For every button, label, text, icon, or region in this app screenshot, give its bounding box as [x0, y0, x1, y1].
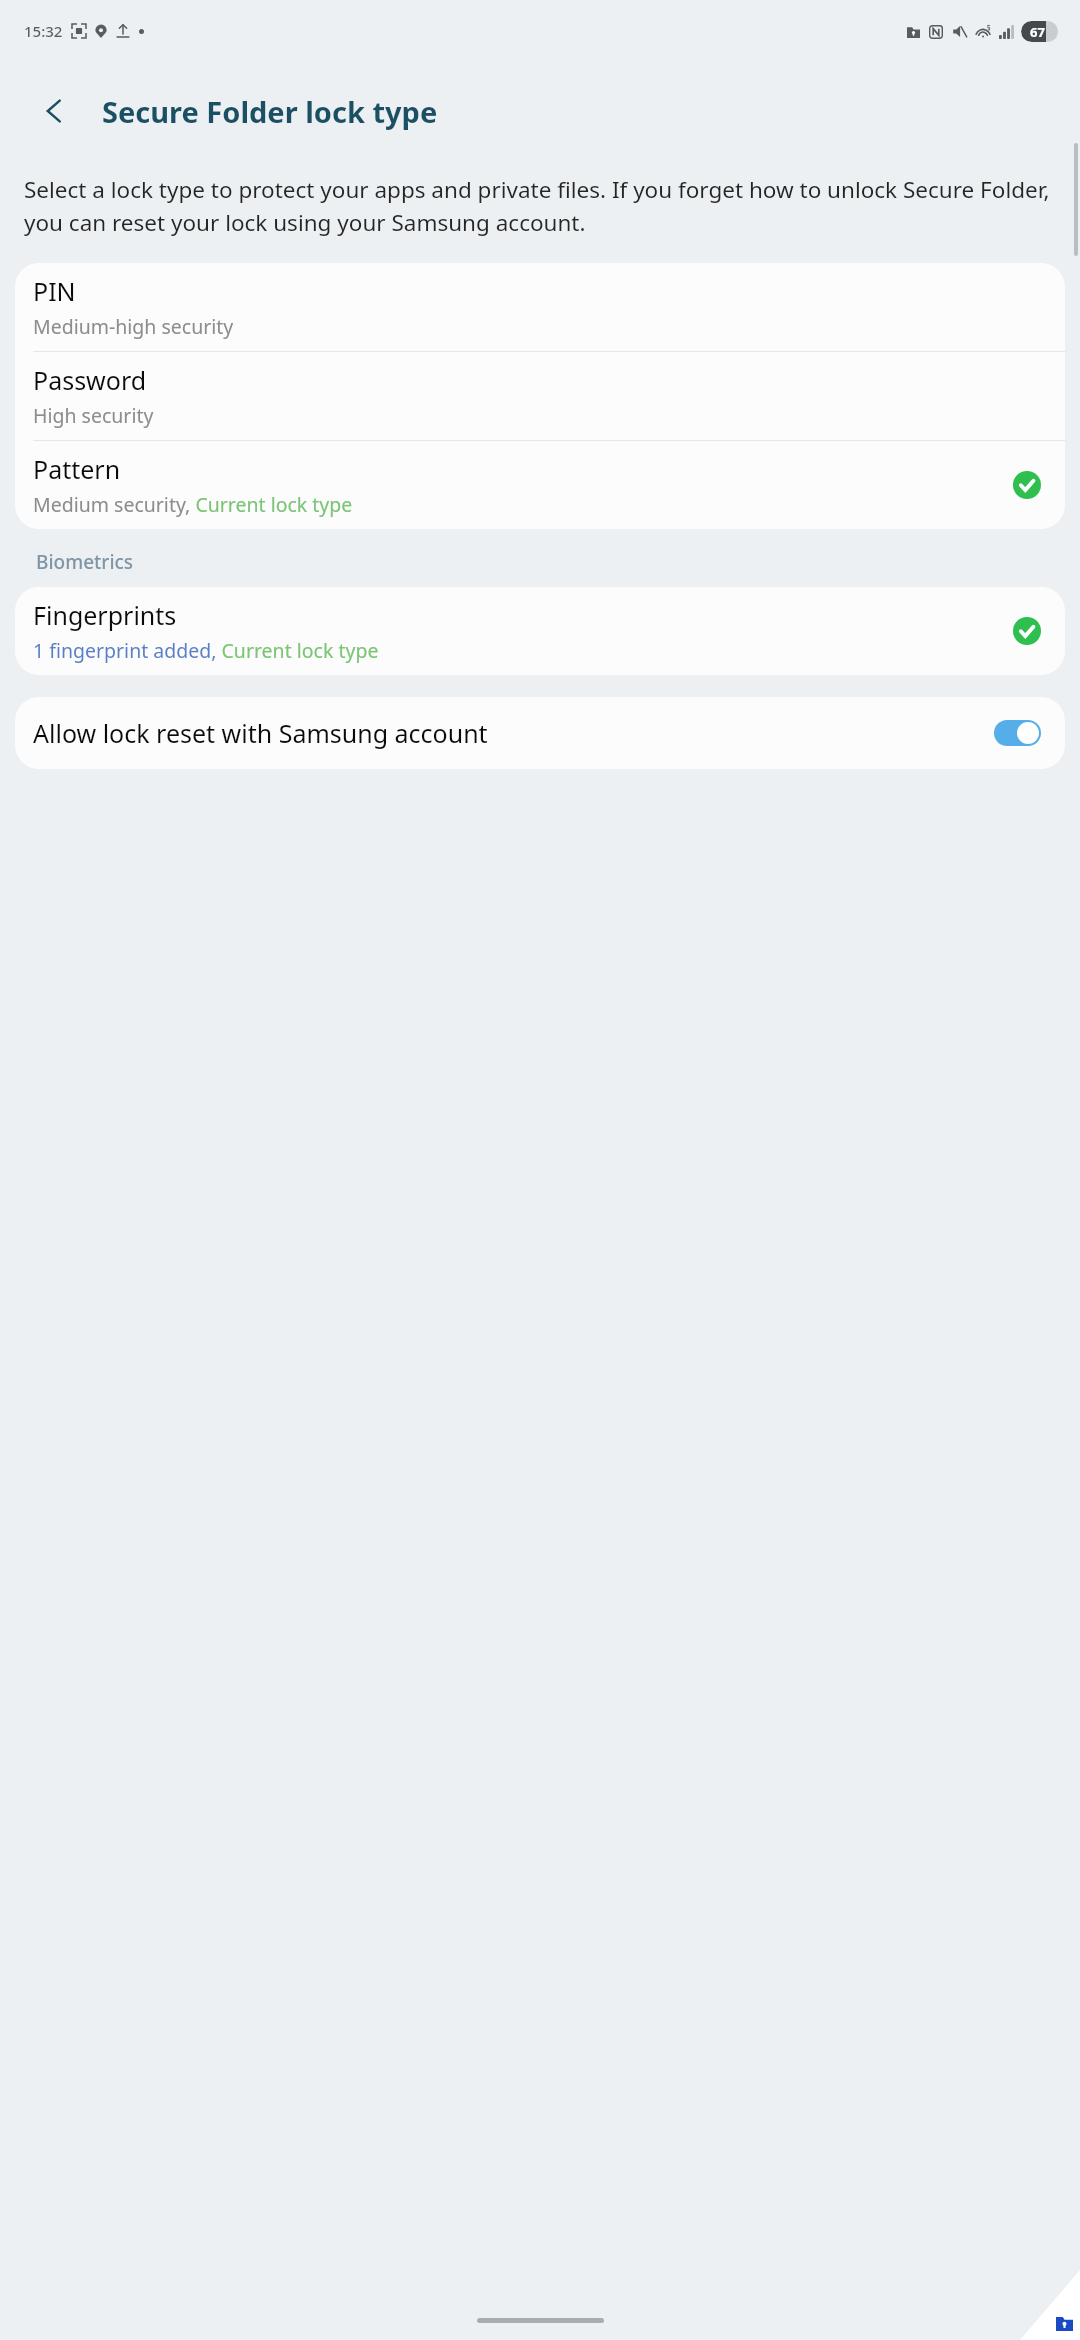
button[interactable]: Allow lock reset with Samsung account	[15, 697, 1065, 769]
staticText: Select a lock type to protect your apps …	[24, 174, 1060, 237]
staticText: Pattern	[33, 452, 121, 486]
staticText: Biometrics	[36, 549, 134, 575]
staticText: Medium security, Current lock type	[33, 491, 353, 518]
staticText: Secure Folder lock type	[102, 92, 438, 131]
staticText: High security	[33, 402, 154, 429]
staticText: PIN	[33, 274, 76, 308]
button[interactable]: Back	[22, 79, 86, 143]
button[interactable]: Pattern	[15, 441, 1065, 529]
staticText: 1 fingerprint added, Current lock type	[33, 637, 379, 664]
staticText: Password	[33, 363, 147, 397]
button[interactable]: Fingerprints	[15, 587, 1065, 675]
staticText: 67	[1030, 23, 1045, 41]
staticText: Allow lock reset with Samsung account	[33, 716, 994, 750]
staticText: Fingerprints	[33, 598, 177, 632]
button[interactable]: Password	[15, 352, 1065, 440]
button[interactable]: PIN	[15, 263, 1065, 351]
staticText: 15:32	[24, 21, 63, 41]
staticText: Medium-high security	[33, 313, 234, 340]
